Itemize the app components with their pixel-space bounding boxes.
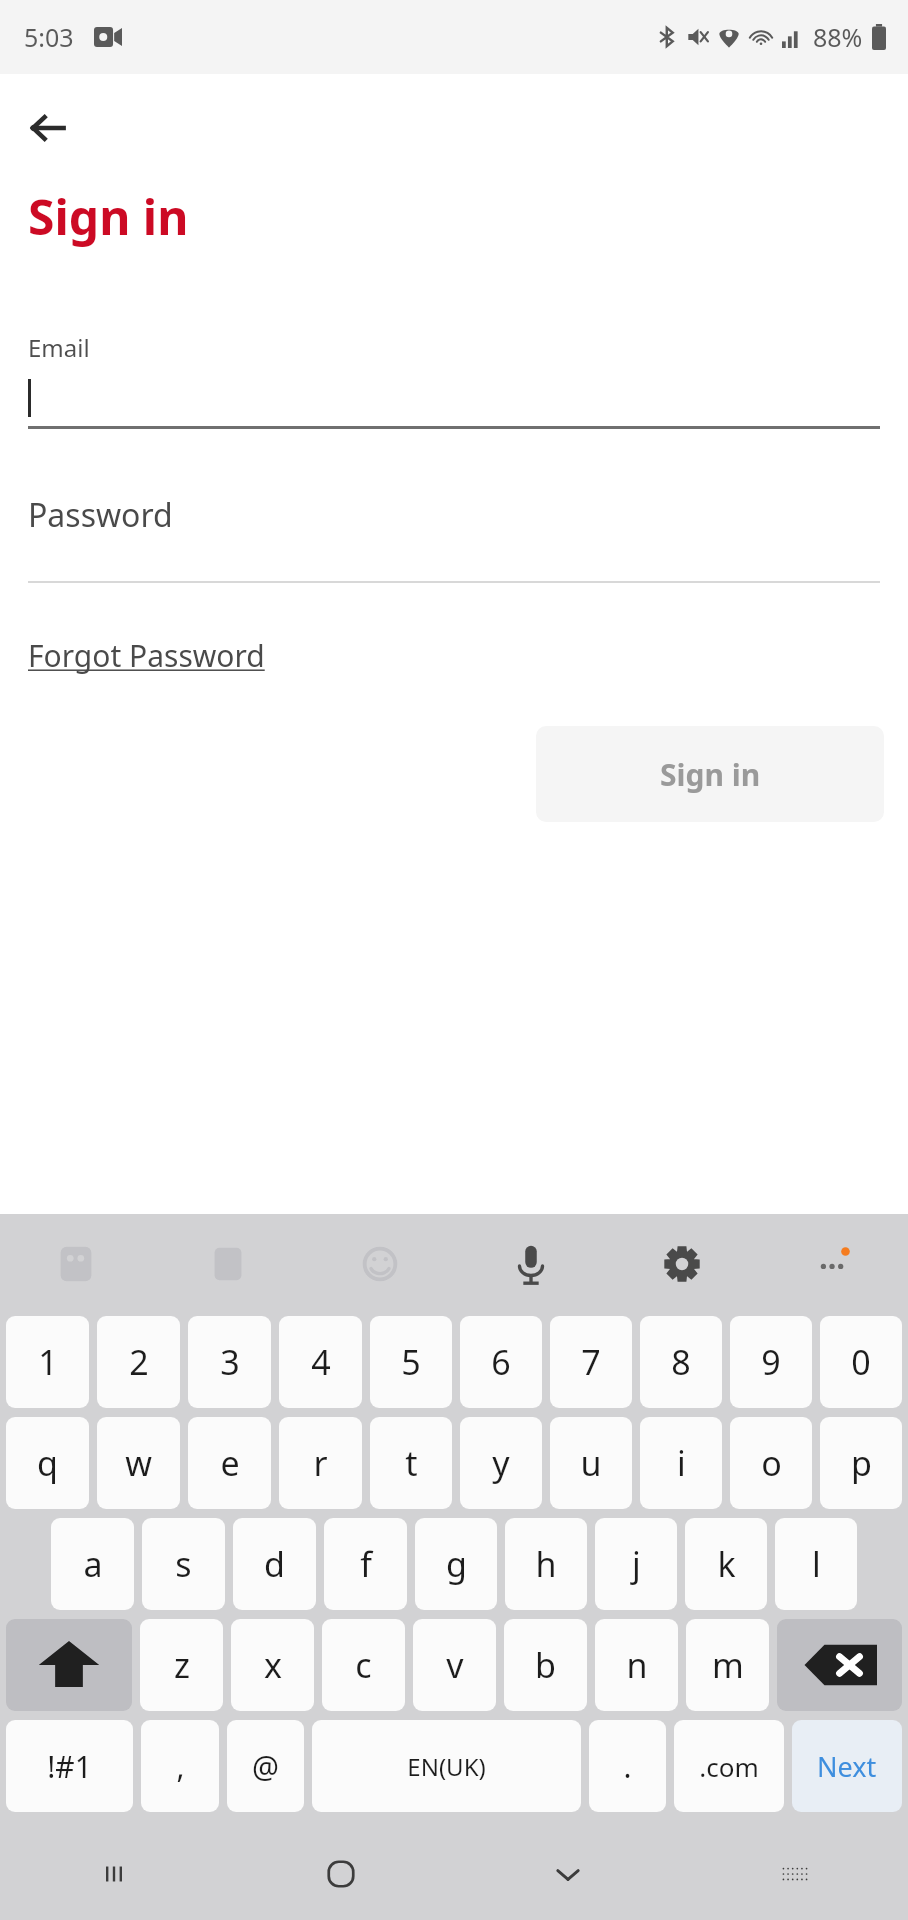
button[interactable]: EN(UK) <box>312 1720 581 1812</box>
staticText: EN(UK) <box>407 1750 486 1783</box>
button[interactable]: e <box>188 1417 271 1509</box>
staticText: f <box>360 1541 372 1587</box>
button[interactable]: Home <box>227 1828 454 1920</box>
button[interactable]: w <box>97 1417 180 1509</box>
staticText: q <box>37 1440 58 1486</box>
button[interactable]: b <box>504 1619 587 1711</box>
staticText: Password <box>28 493 173 537</box>
button[interactable]: a <box>51 1518 134 1610</box>
button[interactable]: 6 <box>460 1316 542 1408</box>
button[interactable]: Forgot Password <box>28 635 265 676</box>
button[interactable]: 2 <box>97 1316 180 1408</box>
button[interactable]: l <box>775 1518 857 1610</box>
staticText: @ <box>252 1746 279 1787</box>
button[interactable]: 3 <box>188 1316 271 1408</box>
button[interactable]: Back <box>18 98 78 158</box>
staticText: Sign in <box>28 184 189 249</box>
staticText: x <box>264 1642 282 1688</box>
staticText: Next <box>817 1748 877 1785</box>
staticText: e <box>220 1440 240 1486</box>
button[interactable]: . <box>589 1720 666 1812</box>
button[interactable]: y <box>460 1417 542 1509</box>
button[interactable]: i <box>640 1417 722 1509</box>
button[interactable]: Hide keyboard <box>454 1828 681 1920</box>
staticText: z <box>174 1642 190 1688</box>
button[interactable]: Sign in <box>536 726 884 822</box>
button[interactable]: Next <box>792 1720 902 1812</box>
staticText: 1 <box>38 1339 58 1385</box>
button[interactable]: s <box>142 1518 225 1610</box>
button[interactable]: Backspace <box>777 1619 902 1711</box>
staticText: !#1 <box>47 1746 92 1787</box>
staticText: c <box>355 1642 372 1688</box>
button[interactable]: d <box>233 1518 316 1610</box>
button[interactable]: k <box>685 1518 767 1610</box>
staticText: m <box>712 1642 744 1688</box>
button[interactable]: Switch keyboard <box>681 1828 908 1920</box>
button[interactable]: Keyboard settings <box>606 1214 757 1314</box>
button[interactable]: t <box>370 1417 452 1509</box>
staticText: w <box>125 1440 152 1486</box>
button[interactable]: m <box>686 1619 769 1711</box>
staticText: b <box>535 1642 556 1688</box>
staticText: 0 <box>851 1339 871 1385</box>
button[interactable]: c <box>322 1619 405 1711</box>
button[interactable]: f <box>324 1518 407 1610</box>
button[interactable]: 5 <box>370 1316 452 1408</box>
button[interactable]: 7 <box>550 1316 632 1408</box>
button[interactable]: More options <box>757 1214 908 1314</box>
button[interactable]: r <box>279 1417 362 1509</box>
staticText: j <box>632 1541 641 1587</box>
button[interactable]: Email <box>28 331 880 429</box>
staticText: Email <box>28 331 90 364</box>
staticText: 88% <box>813 20 863 54</box>
staticText: 5:03 <box>24 20 74 54</box>
staticText: d <box>264 1541 285 1587</box>
button[interactable]: u <box>550 1417 632 1509</box>
button[interactable]: , <box>141 1720 219 1812</box>
button[interactable]: h <box>505 1518 587 1610</box>
staticText: y <box>492 1440 510 1486</box>
button[interactable]: GIF <box>152 1214 304 1314</box>
button[interactable]: v <box>413 1619 496 1711</box>
staticText: 5 <box>401 1339 421 1385</box>
staticText: u <box>580 1440 602 1486</box>
button[interactable]: x <box>231 1619 314 1711</box>
staticText: i <box>677 1440 686 1486</box>
staticText: o <box>761 1440 782 1486</box>
staticText: 2 <box>129 1339 149 1385</box>
button[interactable]: !#1 <box>6 1720 133 1812</box>
staticText: 7 <box>581 1339 601 1385</box>
button[interactable]: @ <box>227 1720 304 1812</box>
button[interactable]: Password <box>28 493 880 583</box>
staticText: , <box>176 1746 185 1787</box>
staticText: l <box>812 1541 821 1587</box>
button[interactable]: 0 <box>820 1316 902 1408</box>
button[interactable]: n <box>595 1619 678 1711</box>
staticText: g <box>446 1541 467 1587</box>
button[interactable]: p <box>820 1417 902 1509</box>
button[interactable]: g <box>415 1518 497 1610</box>
button[interactable]: 4 <box>279 1316 362 1408</box>
staticText: 9 <box>761 1339 781 1385</box>
staticText: . <box>623 1746 632 1787</box>
button[interactable]: Shift <box>6 1619 132 1711</box>
button[interactable]: z <box>140 1619 223 1711</box>
button[interactable]: Stickers <box>0 1214 152 1314</box>
button[interactable]: o <box>730 1417 812 1509</box>
button[interactable]: .com <box>674 1720 784 1812</box>
staticText: .com <box>699 1749 759 1784</box>
button[interactable]: 8 <box>640 1316 722 1408</box>
staticText: v <box>446 1642 464 1688</box>
staticText: t <box>405 1440 418 1486</box>
button[interactable]: Recent apps <box>0 1828 227 1920</box>
button[interactable]: q <box>6 1417 89 1509</box>
button[interactable]: 1 <box>6 1316 89 1408</box>
staticText: n <box>626 1642 648 1688</box>
staticText: 6 <box>491 1339 511 1385</box>
button[interactable]: j <box>595 1518 677 1610</box>
staticText: a <box>83 1541 103 1587</box>
button[interactable]: 9 <box>730 1316 812 1408</box>
button[interactable]: Voice input <box>455 1214 606 1314</box>
